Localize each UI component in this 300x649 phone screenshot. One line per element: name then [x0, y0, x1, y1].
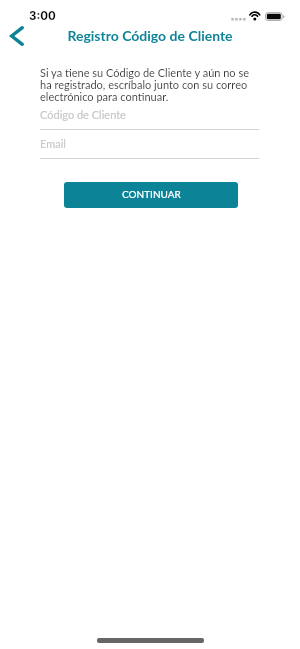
- button[interactable]: CONTINUAR: [64, 182, 238, 208]
- button[interactable]: Back: [2, 21, 32, 51]
- staticText: Si ya tiene su Código de Cliente y aún n…: [40, 66, 260, 103]
- staticText: 3:00: [29, 9, 56, 23]
- staticText: Registro Código de Cliente: [67, 27, 233, 44]
- staticText: CONTINUAR: [122, 188, 181, 200]
- staticText: Código de Cliente: [40, 108, 126, 121]
- staticText: Email: [40, 137, 66, 150]
- button[interactable]: Email: [40, 129, 259, 159]
- button[interactable]: Código de Cliente: [40, 100, 259, 130]
